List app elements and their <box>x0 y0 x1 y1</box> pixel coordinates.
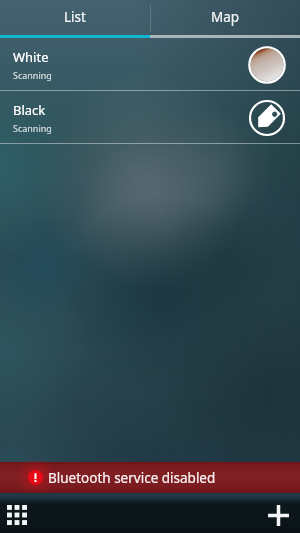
staticText: Map <box>211 8 240 26</box>
staticText: White <box>13 48 49 66</box>
button[interactable]: White <box>0 38 300 91</box>
button[interactable]: List <box>0 0 150 38</box>
button[interactable]: Apps <box>1 499 33 531</box>
button[interactable]: Black <box>0 91 300 144</box>
button[interactable]: Map <box>150 0 300 38</box>
staticText: List <box>64 8 86 26</box>
button[interactable]: Add <box>262 499 294 531</box>
staticText: Black <box>13 101 46 119</box>
staticText: Bluetooth service disabled <box>48 469 216 487</box>
staticText: Scanning <box>13 69 52 81</box>
staticText: Scanning <box>13 122 52 134</box>
